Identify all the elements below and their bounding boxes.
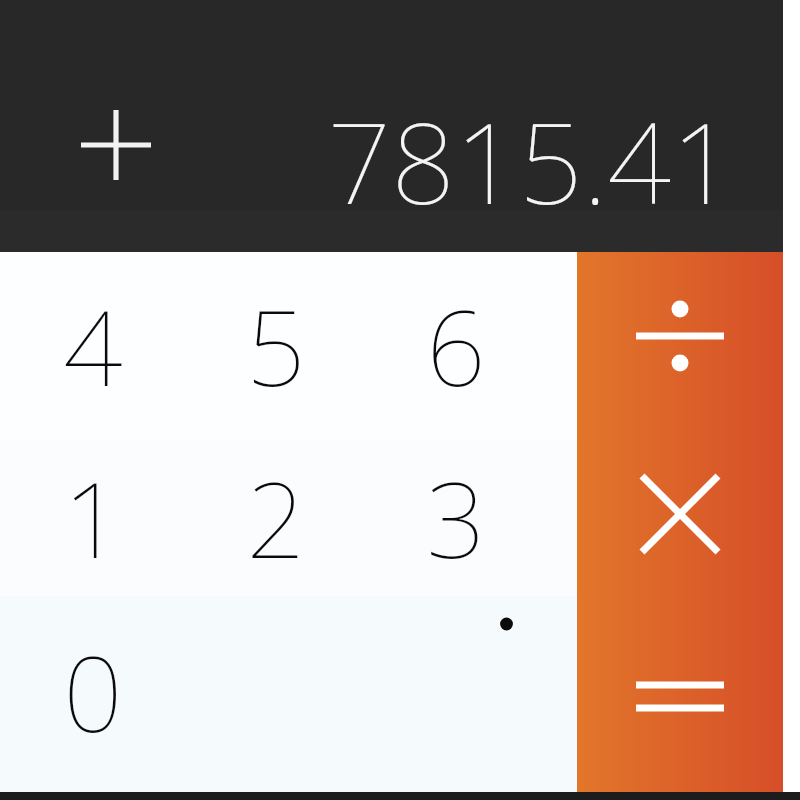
- button[interactable]: 6: [365, 252, 546, 440]
- staticText: 5: [246, 275, 306, 417]
- button[interactable]: 0: [2, 594, 183, 790]
- button[interactable]: 1: [2, 440, 183, 596]
- button[interactable]: 2: [185, 440, 366, 596]
- staticText: 2: [246, 447, 306, 589]
- staticText: 0: [63, 621, 123, 763]
- staticText: 6: [426, 275, 486, 417]
- button[interactable]: 4: [2, 252, 183, 440]
- button[interactable]: Plus: [76, 105, 156, 185]
- staticText: 7815.41: [0, 84, 735, 237]
- button[interactable]: Divide: [577, 252, 783, 452]
- button[interactable]: Decimal point: [365, 596, 546, 792]
- button[interactable]: 5: [185, 252, 366, 440]
- button[interactable]: 3: [365, 440, 546, 596]
- button[interactable]: Equals: [577, 632, 783, 792]
- staticText: 1: [63, 447, 123, 589]
- staticText: 3: [426, 447, 486, 589]
- button[interactable]: Multiply: [577, 452, 783, 632]
- staticText: 4: [63, 275, 123, 417]
